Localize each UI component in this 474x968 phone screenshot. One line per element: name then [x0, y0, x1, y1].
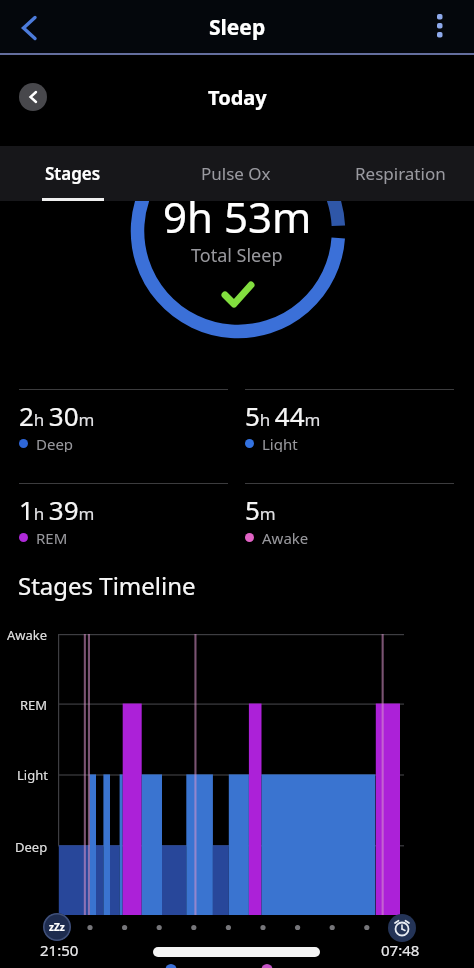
- staticText: Stages: [45, 162, 101, 185]
- staticText: Deep: [36, 434, 74, 452]
- staticText: Respiration: [355, 162, 446, 185]
- staticText: 21:50: [40, 940, 79, 960]
- staticText: Total Sleep: [191, 243, 283, 268]
- staticText: Stages Timeline: [18, 569, 196, 602]
- staticText: REM: [20, 696, 48, 714]
- staticText: Sleep: [209, 13, 266, 42]
- button[interactable]: [420, 4, 460, 48]
- staticText: Today: [208, 84, 267, 111]
- button[interactable]: [19, 83, 47, 111]
- staticText: 2h 30m: [19, 398, 95, 433]
- staticText: Deep: [15, 838, 48, 856]
- button[interactable]: Respiration: [326, 146, 474, 201]
- staticText: 9h 53m: [163, 188, 312, 245]
- button[interactable]: [10, 9, 48, 47]
- staticText: 07:48: [381, 940, 420, 960]
- staticText: Light: [262, 434, 298, 452]
- staticText: zZz: [49, 920, 65, 934]
- staticText: Awake: [262, 528, 309, 546]
- staticText: Pulse Ox: [201, 162, 271, 185]
- staticText: REM: [36, 528, 68, 546]
- button[interactable]: zZz: [43, 913, 71, 941]
- staticText: 5m: [245, 492, 276, 527]
- staticText: 1h 39m: [19, 492, 95, 527]
- button[interactable]: Pulse Ox: [146, 146, 326, 201]
- staticText: Awake: [7, 626, 48, 644]
- button[interactable]: Stages: [0, 146, 146, 201]
- staticText: Light: [17, 766, 48, 784]
- staticText: 5h 44m: [245, 398, 321, 433]
- button[interactable]: [388, 914, 416, 942]
